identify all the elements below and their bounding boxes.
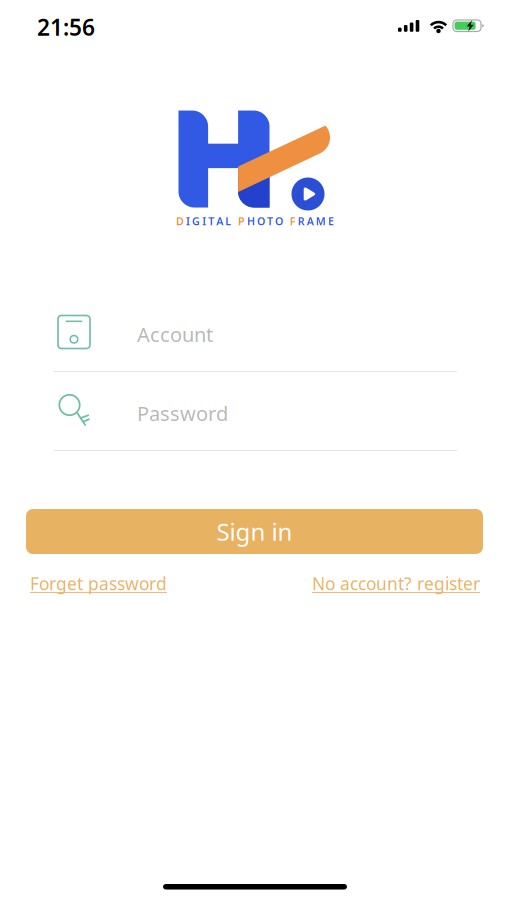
button[interactable]: Sign in: [26, 509, 483, 554]
staticText: F: [290, 214, 296, 228]
staticText: O: [257, 214, 265, 228]
staticText: T: [208, 214, 214, 228]
button[interactable]: No account? register: [312, 572, 480, 595]
staticText: A: [216, 214, 223, 228]
staticText: R: [298, 214, 305, 228]
staticText: M: [316, 214, 326, 228]
staticText: P: [238, 214, 245, 228]
staticText: L: [225, 214, 231, 228]
staticText: A: [307, 214, 314, 228]
staticText: Sign in: [216, 516, 292, 547]
staticText: Password: [137, 400, 228, 427]
button[interactable]: Forget password: [30, 572, 167, 595]
staticText: D: [176, 214, 184, 228]
staticText: T: [267, 214, 273, 228]
staticText: Account: [137, 321, 213, 348]
staticText: Forget password: [30, 572, 167, 595]
staticText: E: [328, 214, 334, 228]
staticText: 21:56: [37, 12, 95, 42]
staticText: O: [275, 214, 283, 228]
staticText: No account? register: [312, 572, 480, 595]
staticText: G: [192, 214, 200, 228]
staticText: H: [247, 214, 255, 228]
staticText: I: [202, 214, 206, 228]
staticText: I: [186, 214, 190, 228]
